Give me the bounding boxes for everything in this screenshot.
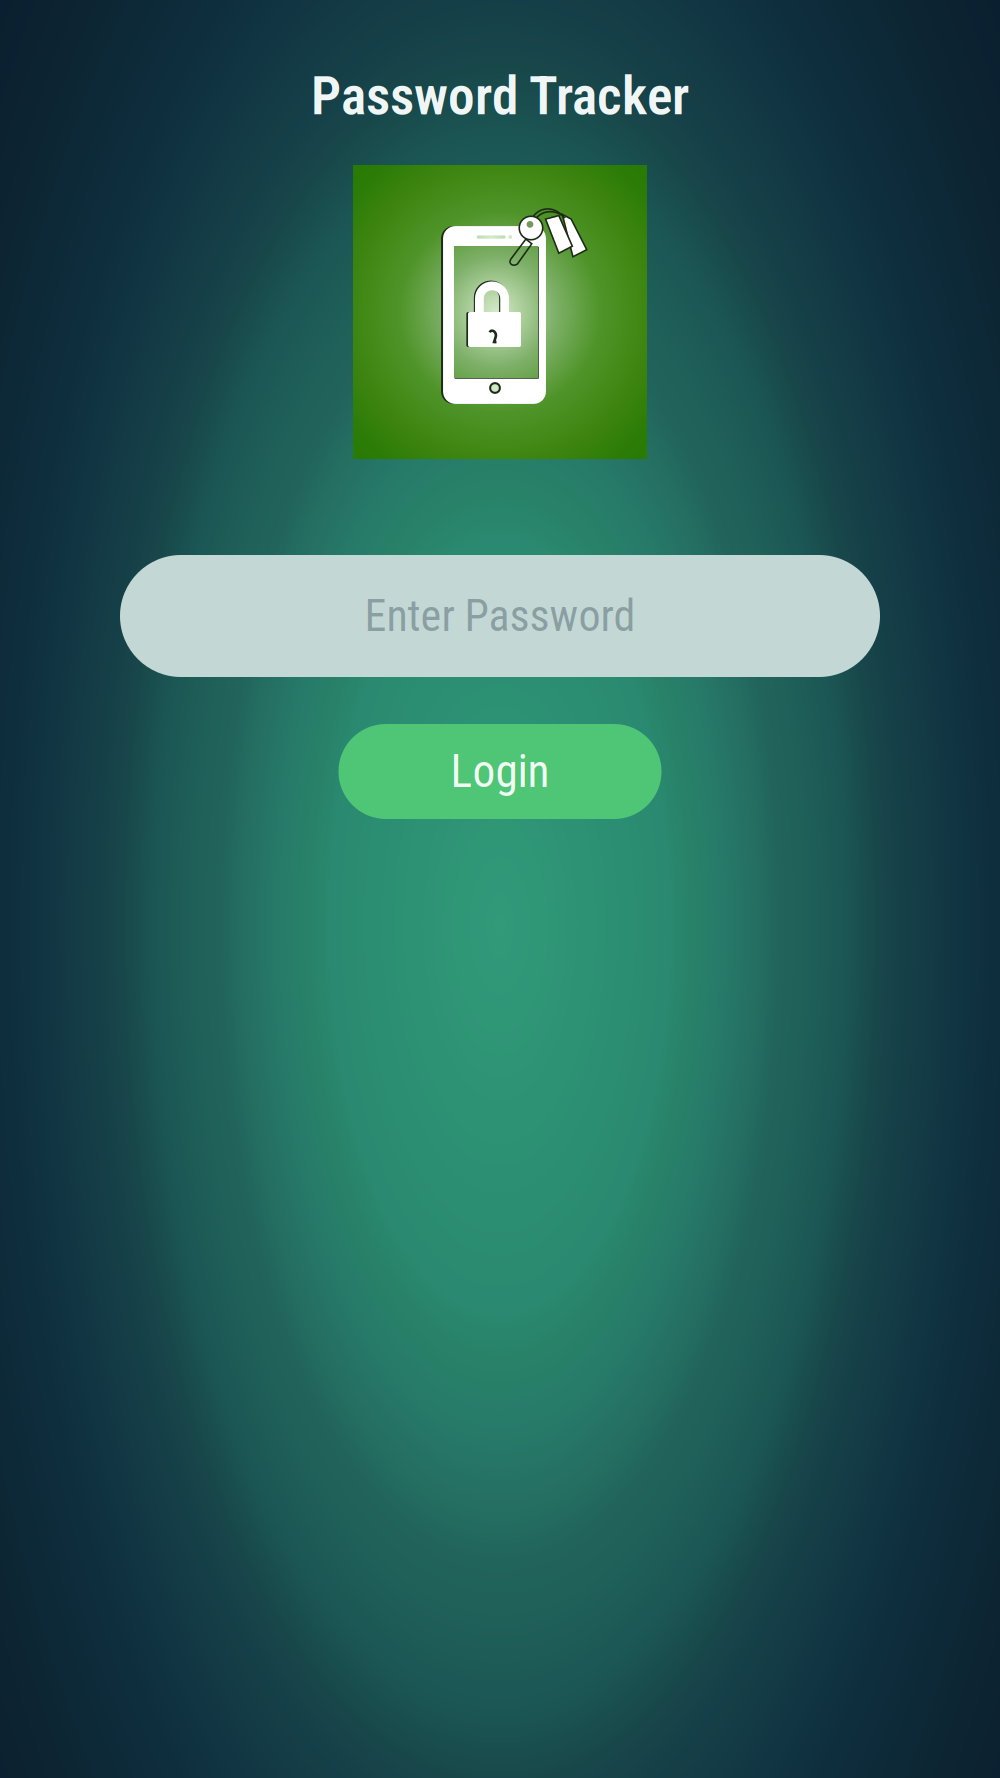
staticText: Login — [450, 745, 549, 798]
staticText: Password Tracker — [311, 65, 689, 127]
staticText: Enter Password — [364, 590, 635, 642]
button[interactable]: Login — [338, 724, 661, 819]
